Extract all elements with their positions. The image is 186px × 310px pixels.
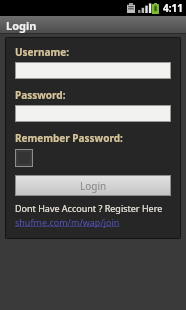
staticText: Login bbox=[6, 18, 37, 33]
staticText: Dont Have Account ? Register Here bbox=[15, 202, 163, 214]
staticText: Remember Password: bbox=[15, 131, 123, 145]
button[interactable]: Login bbox=[16, 176, 170, 195]
button[interactable]: shufme.com/m/wap/join bbox=[15, 216, 120, 228]
staticText: Login bbox=[80, 179, 107, 193]
staticText: Username: bbox=[15, 45, 70, 59]
staticText: 4:11 bbox=[163, 1, 183, 15]
staticText: shufme.com/m/wap/join bbox=[15, 216, 120, 228]
staticText: Password: bbox=[15, 88, 66, 102]
